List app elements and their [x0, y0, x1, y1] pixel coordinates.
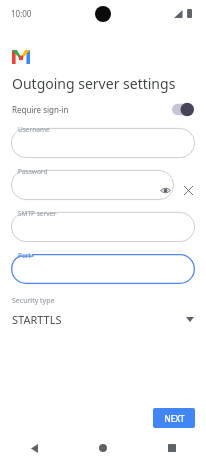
staticText: Security type: [12, 296, 55, 306]
button[interactable]: Recent apps: [137, 435, 206, 461]
staticText: Password: [18, 167, 48, 176]
button[interactable]: Username: [11, 128, 195, 158]
button[interactable]: Password: [11, 170, 174, 200]
button[interactable]: Require sign-in toggle: [172, 103, 194, 116]
button[interactable]: SMTP server: [11, 212, 195, 242]
staticText: NEXT: [164, 413, 185, 424]
staticText: STARTTLS: [12, 312, 62, 327]
button[interactable]: Security type: [0, 296, 206, 327]
staticText: Username: [18, 125, 50, 134]
button[interactable]: Home: [68, 435, 137, 461]
button[interactable]: Back: [0, 435, 68, 461]
button[interactable]: Port: [11, 254, 195, 284]
button[interactable]: Clear password: [180, 182, 196, 198]
button[interactable]: Require sign-in: [0, 98, 206, 120]
staticText: Require sign-in: [12, 104, 69, 115]
button[interactable]: NEXT: [153, 408, 195, 428]
button[interactable]: Show password: [157, 182, 173, 198]
staticText: 10:00: [11, 8, 32, 19]
staticText: Outgoing server settings: [12, 74, 176, 93]
staticText: Port: [18, 251, 31, 260]
staticText: SMTP server: [18, 209, 56, 218]
